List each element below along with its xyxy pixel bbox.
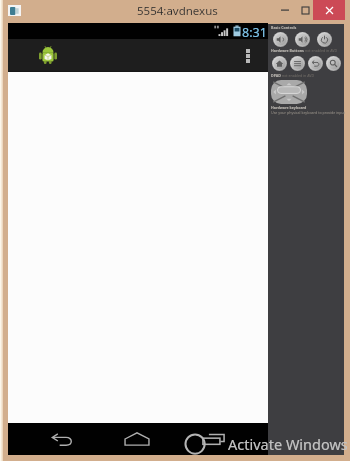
button[interactable]: Back [308,56,323,71]
button[interactable]: Minimize [275,0,295,20]
staticText: 8:31 [242,24,267,40]
button[interactable]: Search [326,56,341,71]
staticText: Use your physical keyboard to provide in… [271,110,346,115]
button[interactable]: Home [272,56,287,71]
staticText: Activate Windows [228,434,348,454]
staticText: not enabled in AVD [304,48,338,53]
button[interactable]: Volume up [295,32,310,47]
button[interactable]: Volume down [273,32,288,47]
button[interactable]: Recent apps [188,423,238,455]
button[interactable]: Menu [290,56,305,71]
button[interactable]: Back [36,423,86,455]
staticText: DPAD [271,73,281,78]
button[interactable]: Power [317,32,332,47]
button[interactable]: App icon [34,39,62,72]
button[interactable]: Maximize [295,0,315,20]
staticText: Basic Controls [271,25,297,30]
button[interactable]: D-pad [271,80,307,104]
button[interactable]: Home [112,423,162,455]
staticText: not enabled in AVD [281,73,315,78]
staticText: 5554:avdnexus [137,3,218,19]
staticText: Hardware Buttons [271,48,304,53]
staticText: Hardware keyboard [271,105,307,110]
button[interactable]: Close [313,0,345,20]
button[interactable]: More options [236,39,260,72]
